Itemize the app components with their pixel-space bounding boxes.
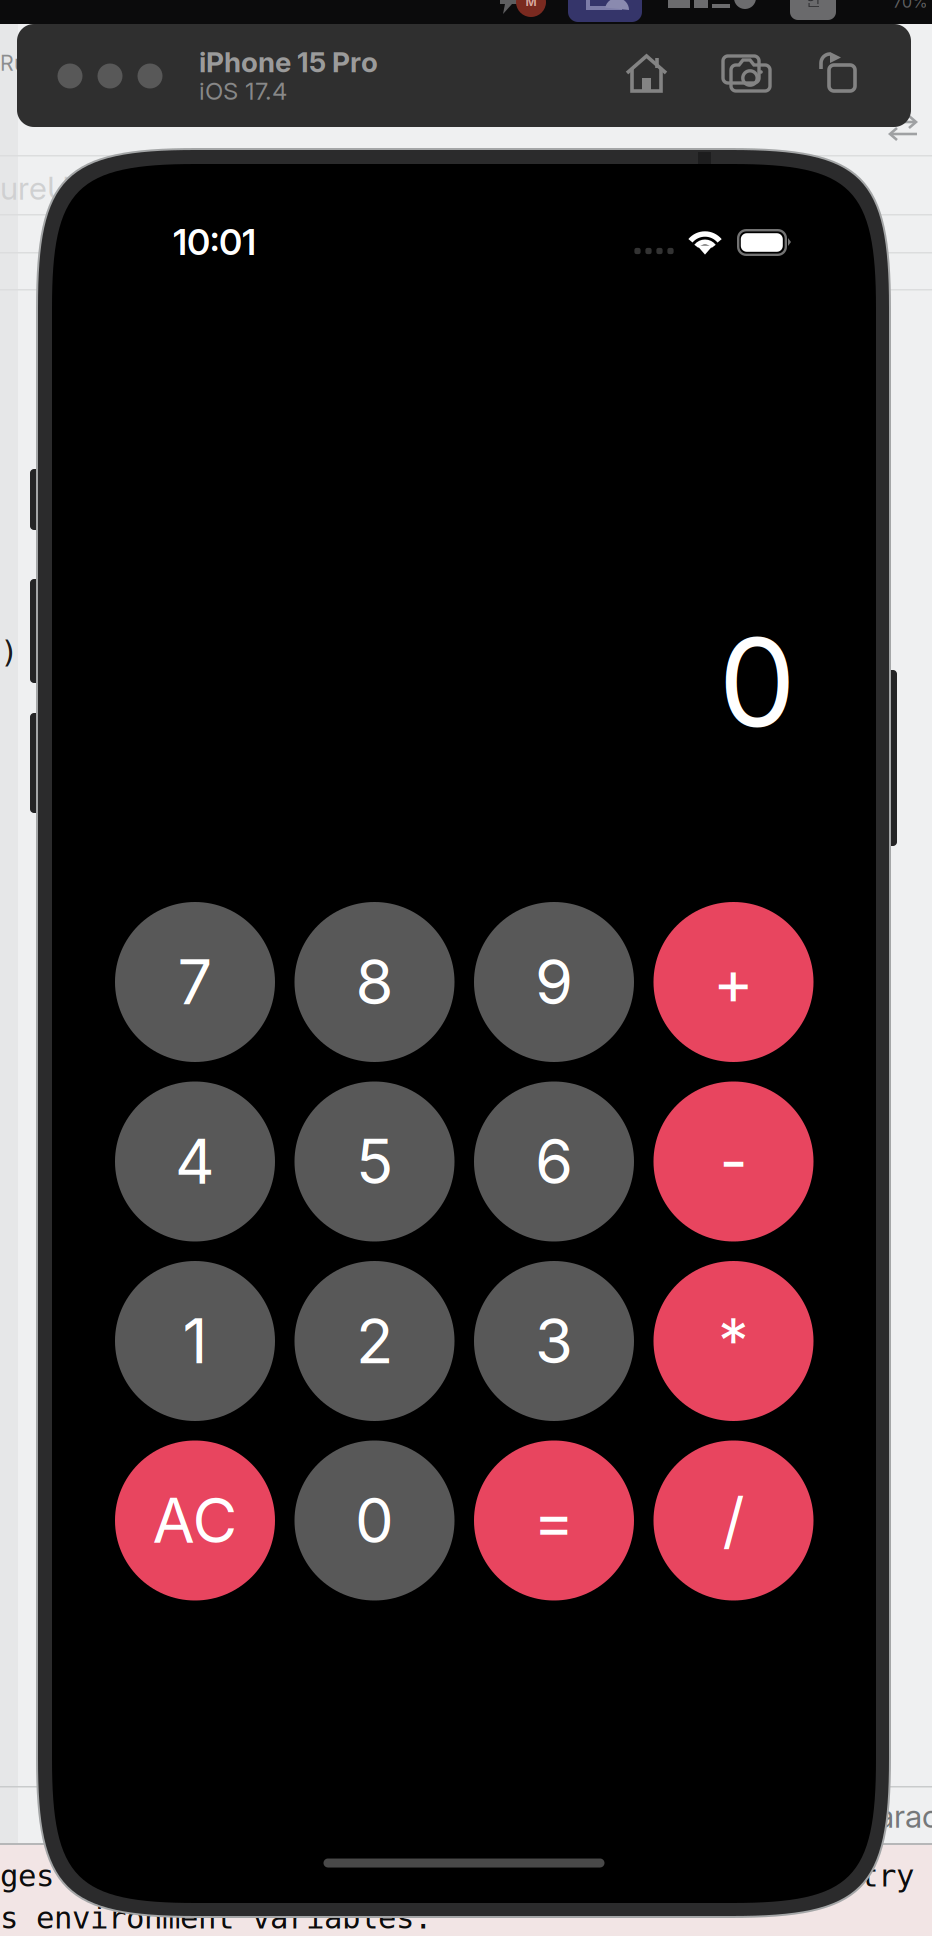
button[interactable]: * — [653, 1261, 813, 1421]
button[interactable]: 7 — [115, 902, 275, 1062]
staticText: AC — [152, 1483, 237, 1558]
button[interactable]: Home — [0, 0, 932, 1936]
button[interactable]: 5 — [294, 1081, 454, 1241]
staticText: / — [722, 1483, 744, 1558]
button[interactable]: 6 — [474, 1081, 634, 1241]
button[interactable]: 9 — [474, 902, 634, 1062]
staticText: 8 — [355, 945, 393, 1019]
staticText: 인 — [805, 0, 821, 10]
button[interactable]: / — [653, 1440, 813, 1600]
staticText: + — [713, 945, 754, 1019]
staticText: ) — [0, 634, 18, 670]
staticText: 4 — [175, 1124, 215, 1199]
button[interactable]: - — [653, 1081, 813, 1241]
button[interactable]: Rotate — [0, 0, 932, 1936]
staticText: * — [718, 1304, 749, 1378]
staticText: s environment variables. — [0, 1900, 432, 1936]
button[interactable]: 2 — [294, 1261, 454, 1421]
staticText: Ru — [0, 50, 27, 76]
button[interactable]: Close — [0, 0, 932, 1936]
button[interactable]: + — [653, 902, 813, 1062]
staticText: ureUI() — [0, 169, 100, 207]
staticText: aract — [877, 1797, 932, 1835]
staticText: 3 — [535, 1304, 573, 1378]
staticText: 5 — [356, 1124, 393, 1199]
button[interactable]: Screenshot — [0, 0, 932, 1936]
staticText: 6 — [535, 1124, 573, 1199]
staticText: 7 — [177, 945, 212, 1019]
staticText: iOS 17.4 — [199, 76, 287, 105]
staticText: = — [533, 1483, 574, 1558]
button[interactable]: 1 — [115, 1261, 275, 1421]
staticText: 0 — [355, 1483, 394, 1558]
button[interactable]: Zoom — [0, 0, 932, 1936]
staticText: - — [719, 1124, 747, 1199]
button[interactable]: Minimise — [0, 0, 932, 1936]
staticText: 0 — [718, 608, 795, 756]
button[interactable]: 8 — [294, 902, 454, 1062]
button[interactable]: AC — [115, 1440, 275, 1600]
staticText: try — [860, 1858, 914, 1894]
button[interactable]: 0 — [294, 1440, 454, 1600]
staticText: 1 — [182, 1304, 207, 1378]
staticText: 2 — [356, 1304, 393, 1378]
staticText: 9 — [535, 945, 573, 1019]
staticText: 10:01 — [173, 220, 256, 264]
button[interactable]: = — [474, 1440, 634, 1600]
staticText: iPhone 15 Pro — [199, 45, 378, 79]
staticText: M — [525, 0, 536, 9]
staticText: ges m — [0, 1858, 90, 1894]
staticText: 70% — [893, 0, 928, 12]
button[interactable]: 3 — [474, 1261, 634, 1421]
button[interactable]: 4 — [115, 1081, 275, 1241]
